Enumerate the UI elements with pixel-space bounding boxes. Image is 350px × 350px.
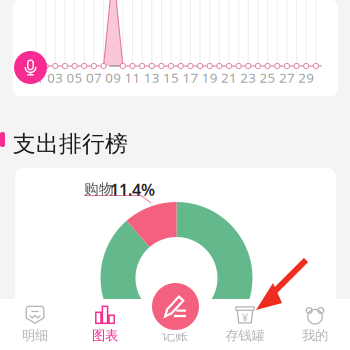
staticText: 15	[163, 69, 179, 86]
staticText: 01	[28, 69, 44, 86]
button[interactable]: ¥	[210, 299, 280, 350]
staticText: 支出排行榜	[13, 130, 128, 158]
staticText: 13	[144, 69, 160, 86]
staticText: 25	[260, 69, 276, 86]
staticText: 存钱罐	[225, 327, 264, 344]
staticText: 记账	[162, 327, 188, 344]
staticText: 09	[105, 69, 121, 86]
staticText: 购物	[84, 180, 114, 198]
button[interactable]: 明细	[0, 299, 70, 350]
staticText: 03	[47, 69, 63, 86]
staticText: 11.4%	[110, 179, 155, 200]
staticText: 19	[202, 69, 218, 86]
staticText: 11	[124, 69, 140, 86]
button[interactable]: Add record	[152, 283, 199, 330]
button[interactable]: Voice input	[14, 51, 47, 84]
staticText: 17	[182, 69, 198, 86]
button[interactable]: 记账	[140, 299, 210, 350]
staticText: 21	[221, 69, 237, 86]
staticText: ¥	[242, 310, 248, 324]
staticText: 23	[240, 69, 256, 86]
staticText: 07	[86, 69, 102, 86]
staticText: 明细	[22, 327, 48, 344]
staticText: 27	[279, 69, 295, 86]
staticText: 图表	[92, 327, 118, 344]
button[interactable]: 图表	[70, 299, 140, 350]
button[interactable]: 我的	[280, 299, 350, 350]
staticText: 我的	[302, 327, 328, 344]
staticText: 05	[67, 69, 83, 86]
staticText: 29	[298, 69, 314, 86]
